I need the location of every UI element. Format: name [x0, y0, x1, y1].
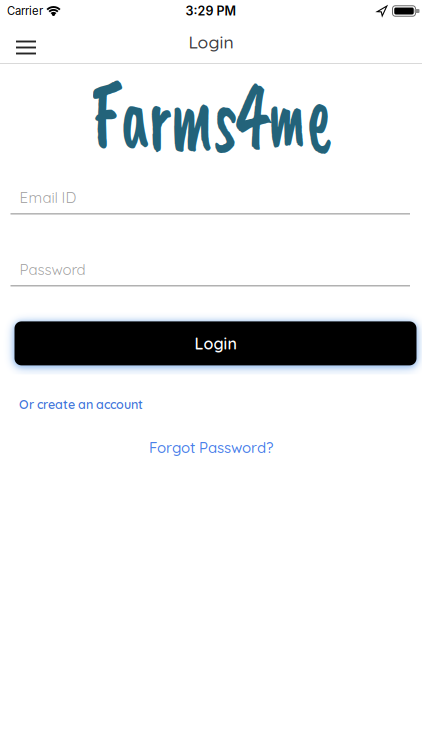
button[interactable]: Menu: [10, 34, 42, 60]
staticText: Login: [188, 31, 233, 53]
staticText: Or create an account: [19, 396, 143, 412]
staticText: Farms4me: [90, 74, 331, 157]
staticText: Email ID: [19, 188, 76, 207]
button[interactable]: Forgot Password?: [149, 438, 273, 457]
button[interactable]: Or create an account: [19, 396, 143, 412]
staticText: Carrier: [7, 4, 43, 18]
staticText: 3:29 PM: [185, 3, 236, 18]
staticText: Password: [19, 260, 85, 279]
button[interactable]: Login: [14, 321, 416, 365]
staticText: Login: [194, 333, 236, 353]
staticText: Forgot Password?: [149, 438, 273, 457]
